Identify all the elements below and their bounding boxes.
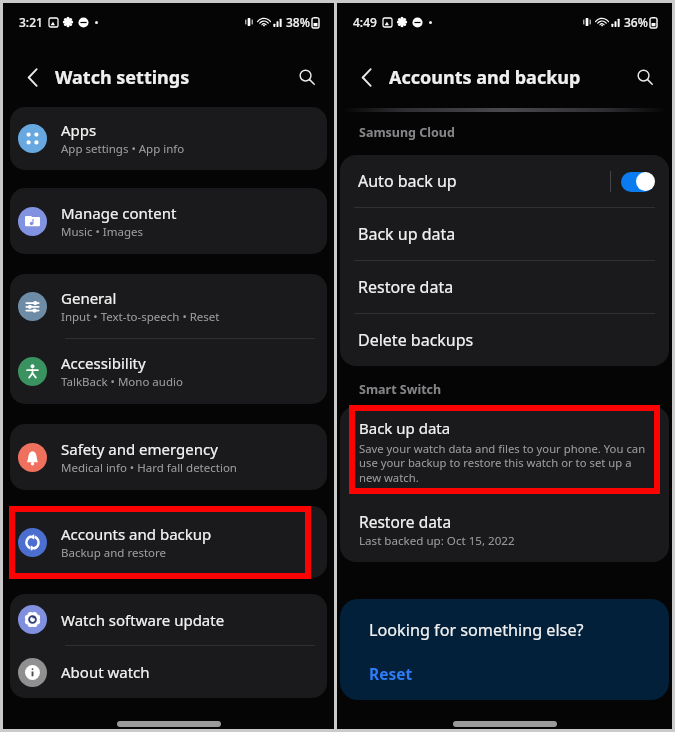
button[interactable]: Watch software update — [10, 594, 327, 645]
staticText: Watch settings — [55, 65, 190, 90]
button[interactable]: Search — [290, 60, 324, 94]
button[interactable]: Manage content — [10, 188, 327, 254]
staticText: Accounts and backup — [61, 524, 212, 544]
staticText: Apps — [61, 120, 97, 140]
staticText: Last backed up: Oct 15, 2022 — [359, 533, 515, 549]
button[interactable]: Back up data — [340, 406, 669, 496]
staticText: Input • Text-to-speech • Reset — [61, 309, 220, 325]
staticText: Safety and emergency — [61, 439, 218, 459]
staticText: Restore data — [359, 511, 452, 532]
button[interactable]: Navigate up — [14, 59, 50, 95]
button[interactable]: Apps — [10, 107, 327, 170]
staticText: Watch software update — [61, 610, 225, 630]
staticText: About watch — [61, 662, 150, 682]
staticText: Reset — [369, 663, 413, 684]
staticText: Looking for something else? — [369, 619, 584, 641]
button[interactable]: Auto back up — [340, 155, 669, 207]
staticText: Backup and restore — [61, 545, 167, 561]
staticText: Accounts and backup — [389, 65, 581, 90]
button[interactable]: Back up data — [340, 208, 669, 260]
staticText: 36% — [624, 14, 648, 30]
staticText: 3:21 — [19, 14, 43, 30]
button[interactable]: Safety and emergency — [10, 424, 327, 490]
staticText: 4:49 — [353, 14, 377, 30]
staticText: Save your watch data and files to your p… — [359, 441, 651, 486]
staticText: Manage content — [61, 203, 177, 223]
staticText: General — [61, 288, 117, 308]
button[interactable]: Accessibility — [10, 339, 327, 404]
staticText: Restore data — [358, 276, 454, 298]
staticText: 38% — [286, 14, 310, 30]
staticText: Smart Switch — [359, 381, 442, 398]
button[interactable]: Navigate up — [348, 59, 384, 95]
staticText: Medical info • Hard fall detection — [61, 460, 237, 476]
staticText: Back up data — [359, 418, 451, 438]
staticText: Back up data — [358, 223, 456, 245]
staticText: Auto back up — [358, 170, 457, 192]
button[interactable]: Delete backups — [340, 314, 669, 366]
button[interactable]: General — [10, 274, 327, 338]
staticText: Samsung Cloud — [359, 124, 455, 141]
staticText: Delete backups — [358, 329, 474, 351]
staticText: Accessibility — [61, 353, 146, 373]
button[interactable]: Search — [628, 60, 662, 94]
staticText: TalkBack • Mono audio — [61, 374, 183, 390]
button[interactable]: Restore data — [340, 261, 669, 313]
button[interactable]: About watch — [10, 646, 327, 698]
staticText: Music • Images — [61, 224, 144, 240]
button[interactable]: Accounts and backup — [10, 506, 327, 578]
button[interactable]: Reset — [369, 663, 413, 684]
staticText: App settings • App info — [61, 141, 185, 157]
button[interactable]: Restore data — [340, 496, 669, 562]
